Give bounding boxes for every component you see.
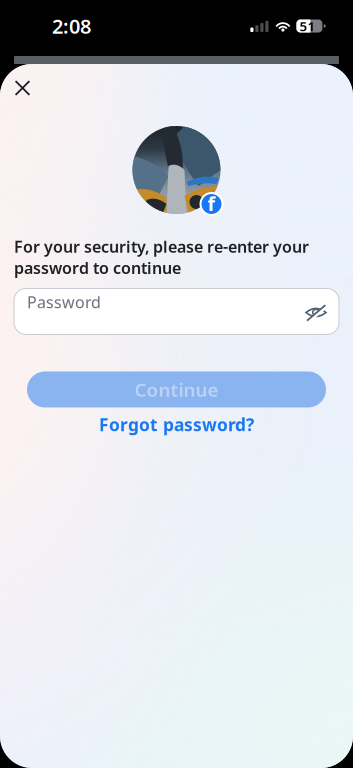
staticText: Forgot password? — [99, 413, 254, 436]
button[interactable]: Continue — [27, 371, 326, 407]
staticText: 2:08 — [52, 13, 91, 39]
button[interactable]: Close — [0, 64, 45, 112]
staticText: f — [207, 190, 215, 217]
staticText: Continue — [134, 377, 218, 402]
button[interactable]: Forgot password? — [0, 412, 353, 436]
staticText: 51 — [299, 17, 315, 35]
staticText: For your security, please re-enter your … — [14, 236, 309, 278]
staticText: Password — [27, 291, 101, 313]
button[interactable]: Show password — [305, 303, 327, 321]
